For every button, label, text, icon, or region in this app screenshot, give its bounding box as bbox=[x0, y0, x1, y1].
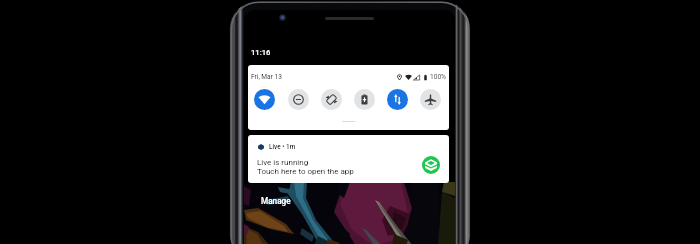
staticText: Fri, Mar 13 bbox=[251, 73, 282, 81]
button[interactable]: Mobile data bbox=[387, 89, 408, 110]
button[interactable]: Wi-Fi bbox=[254, 89, 275, 110]
button[interactable]: Do not disturb bbox=[288, 89, 309, 110]
staticText: Manage bbox=[261, 196, 291, 206]
button[interactable]: Manage bbox=[256, 194, 296, 208]
button[interactable]: Live • 1m bbox=[248, 135, 449, 183]
button[interactable]: Auto rotate bbox=[321, 89, 342, 110]
button[interactable]: Airplane mode bbox=[420, 89, 441, 110]
staticText: 100% bbox=[430, 73, 446, 81]
staticText: Touch here to open the app bbox=[257, 167, 354, 176]
staticText: Live is running bbox=[257, 158, 309, 167]
staticText: 11:16 bbox=[251, 48, 271, 57]
staticText: Live • 1m bbox=[269, 143, 296, 151]
button[interactable]: Battery saver bbox=[354, 89, 375, 110]
